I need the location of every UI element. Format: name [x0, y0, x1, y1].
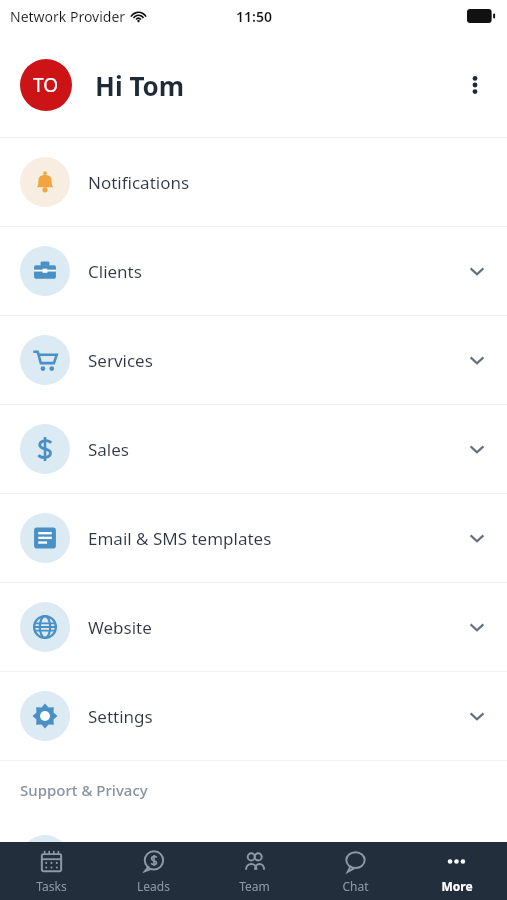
button[interactable]: Leads	[102, 842, 204, 900]
button[interactable]: Notifications	[0, 138, 507, 226]
staticText: Team	[239, 878, 270, 894]
staticText: Email & SMS templates	[88, 527, 272, 550]
staticText: Clients	[88, 260, 142, 283]
staticText: Network Provider	[10, 7, 126, 26]
button[interactable]: Help	[0, 819, 507, 900]
staticText: Sales	[88, 438, 129, 461]
staticText: Settings	[88, 705, 153, 728]
button[interactable]: Website	[0, 583, 507, 671]
staticText: Tasks	[36, 878, 67, 894]
button[interactable]: More	[406, 842, 507, 900]
staticText: Notifications	[88, 171, 190, 194]
button[interactable]: Team	[204, 842, 305, 900]
staticText: Services	[88, 349, 153, 372]
staticText: Leads	[137, 878, 170, 894]
button[interactable]: Clients	[0, 227, 507, 315]
staticText: Hi Tom	[95, 68, 185, 103]
button[interactable]: Sales	[0, 405, 507, 493]
button[interactable]: Chat	[305, 842, 406, 900]
staticText: More	[441, 878, 473, 894]
button[interactable]: Email & SMS templates	[0, 494, 507, 582]
button[interactable]: Tasks	[0, 842, 102, 900]
button[interactable]: More options	[453, 63, 497, 107]
staticText: 11:50	[236, 7, 272, 26]
staticText: TO	[33, 72, 59, 98]
button[interactable]: Services	[0, 316, 507, 404]
staticText: Support & Privacy	[20, 780, 148, 800]
button[interactable]: Settings	[0, 672, 507, 760]
staticText: Website	[88, 616, 152, 639]
staticText: Chat	[342, 878, 369, 894]
